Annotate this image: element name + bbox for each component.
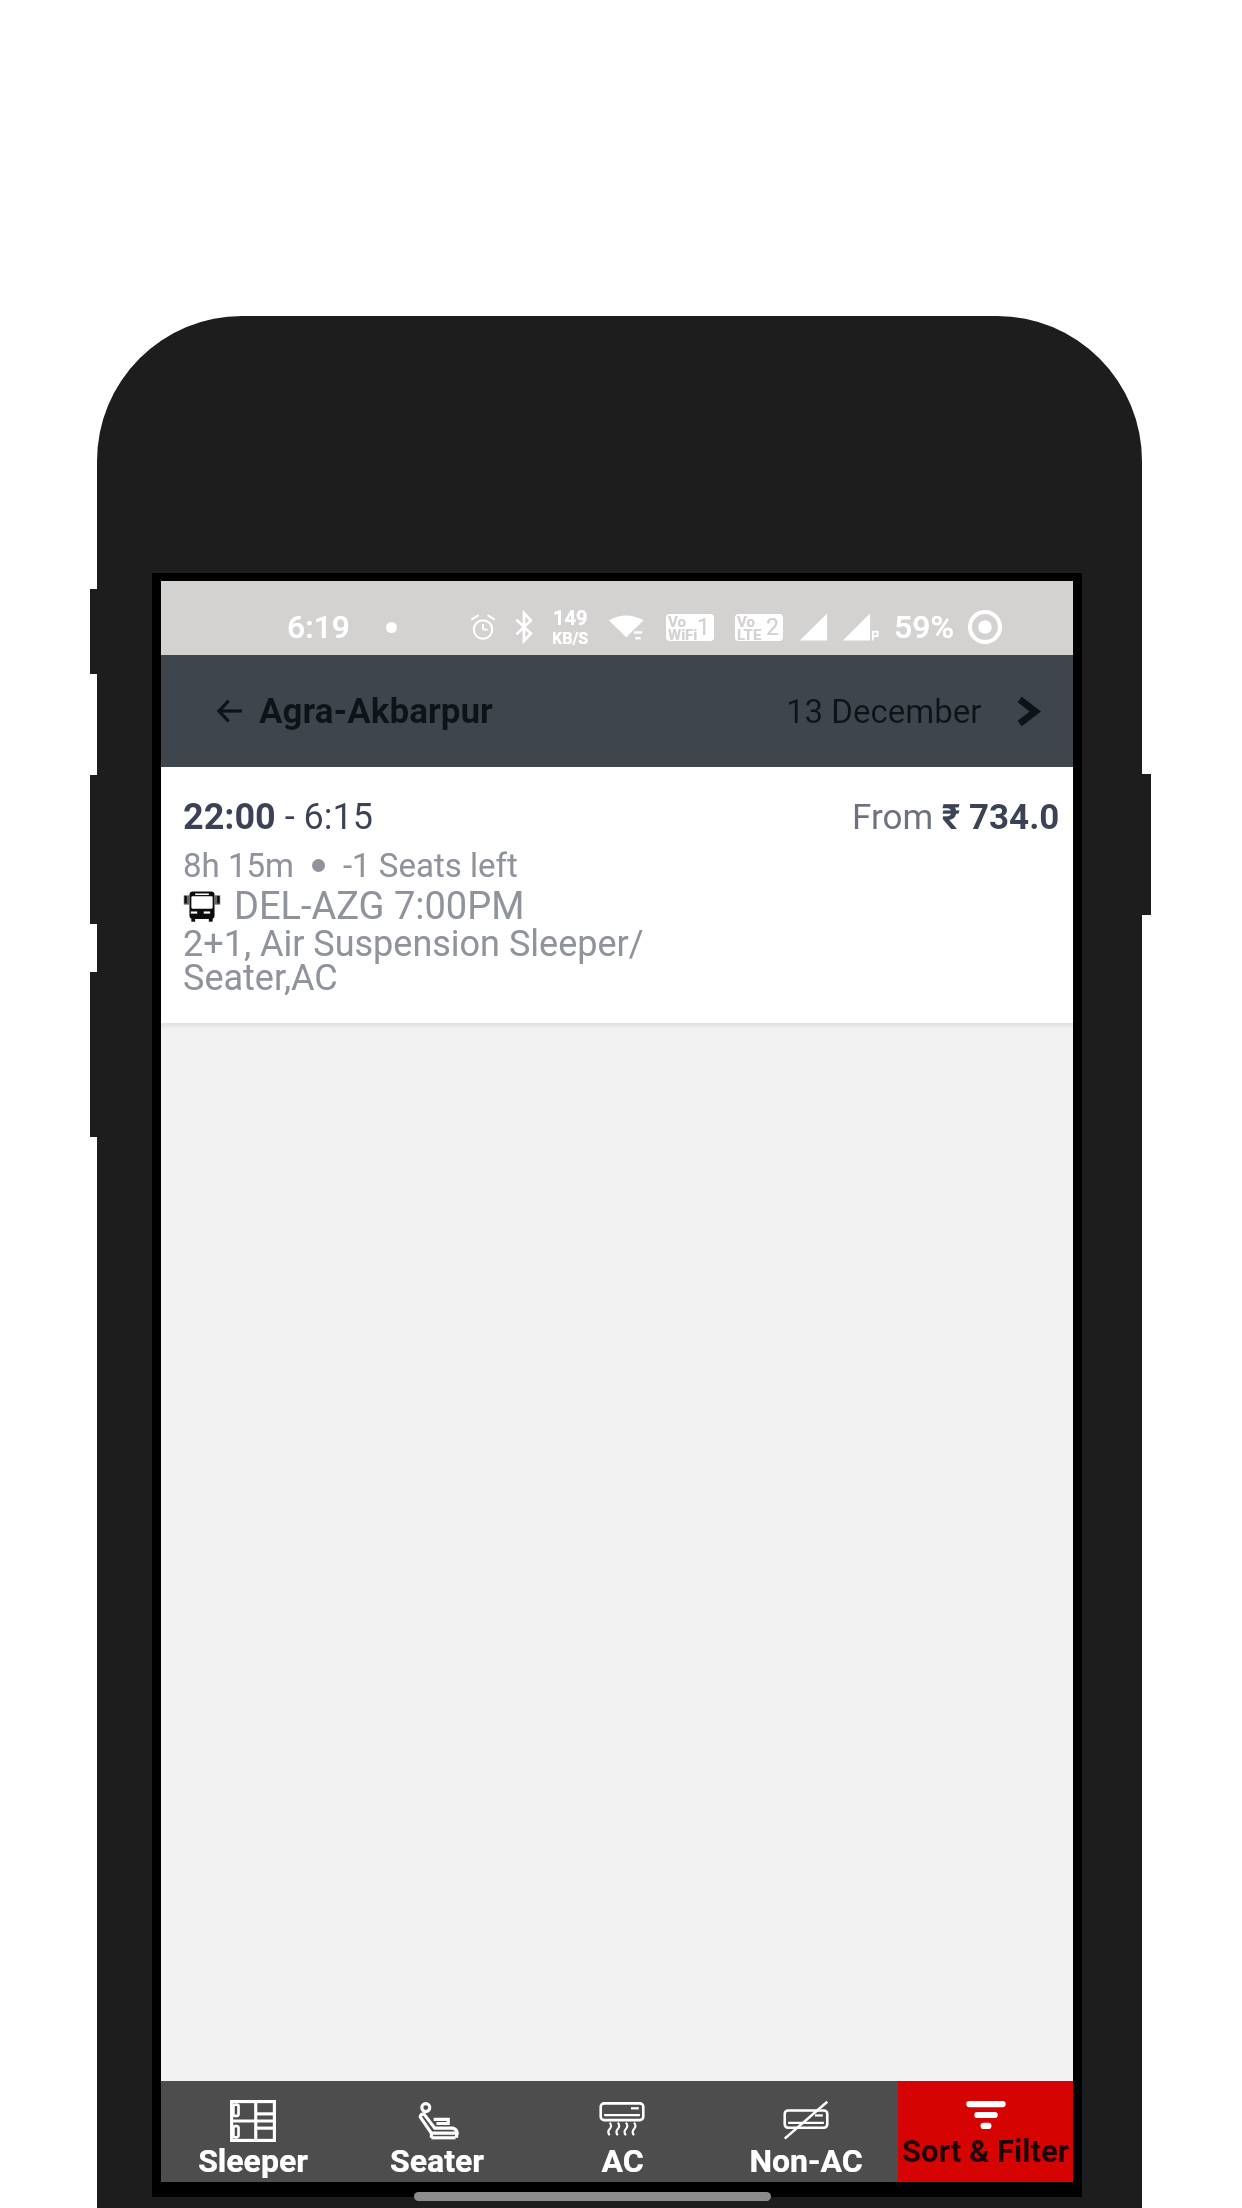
staticText: AC	[601, 2142, 644, 2180]
staticText: Seater	[390, 2142, 484, 2180]
staticText: Agra-Akbarpur	[259, 691, 493, 732]
staticText: 22:00 - 6:15	[183, 796, 374, 838]
staticText: 8h 15m	[183, 846, 294, 885]
button[interactable]: Back	[161, 655, 259, 767]
staticText: 59%	[894, 608, 954, 646]
button[interactable]: Non-AC	[714, 2081, 898, 2182]
button[interactable]: 22:00 - 6:15	[161, 767, 1073, 1023]
staticText: 13 December	[786, 692, 982, 731]
staticText: WiFi	[668, 626, 698, 641]
staticText: -1 Seats left	[343, 846, 518, 885]
staticText: Vo	[668, 614, 686, 631]
staticText: 2	[766, 614, 779, 641]
staticText: DEL-AZG 7:00PM	[234, 884, 525, 929]
staticText: 1	[697, 614, 710, 641]
staticText: 2+1, Air Suspension Sleeper/ Seater,AC	[183, 923, 644, 999]
staticText: Sleeper	[198, 2142, 308, 2180]
staticText: 149	[553, 606, 588, 629]
button[interactable]: Seater	[345, 2081, 529, 2182]
staticText: LTE	[737, 626, 762, 641]
staticText: 6:19	[287, 608, 351, 646]
staticText: KB/S	[552, 629, 589, 648]
button[interactable]: 13 December	[786, 682, 1073, 741]
staticText: Sort & Filter	[902, 2133, 1069, 2169]
button[interactable]: AC	[529, 2081, 714, 2182]
button[interactable]: Sleeper	[161, 2081, 345, 2182]
staticText: Non-AC	[749, 2142, 863, 2180]
button[interactable]: Sort & Filter	[898, 2081, 1073, 2182]
staticText: Vo	[737, 614, 755, 631]
staticText: From ₹ 734.0	[852, 797, 1060, 838]
